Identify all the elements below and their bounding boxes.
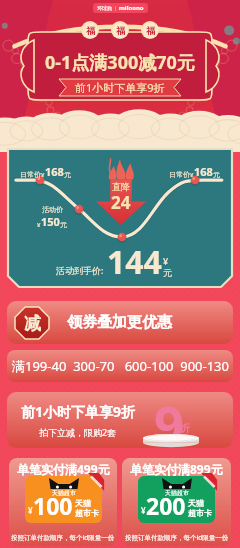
- staticText: 天猫: [188, 498, 204, 508]
- button[interactable]: 满199-40 300-70 600-100 900-130: [7, 350, 233, 382]
- staticText: ¥: [28, 505, 33, 516]
- staticText: 天猫超市: [52, 489, 76, 497]
- staticText: 前1小时下单享9折: [75, 80, 165, 95]
- staticText: 单笔实付满499元: [17, 461, 110, 477]
- staticText: 日常价: [20, 170, 41, 179]
- staticText: 减: [24, 313, 41, 334]
- staticText: 单笔实付满899元: [130, 461, 223, 477]
- staticText: 超市卡: [75, 508, 99, 518]
- staticText: 日常价: [169, 170, 190, 179]
- staticText: 福: [86, 25, 95, 36]
- staticText: ¥: [37, 221, 41, 229]
- staticText: 福: [116, 25, 125, 36]
- staticText: |: [114, 5, 117, 12]
- staticText: 按照订单付款顺序，每个id限量一份: [125, 533, 229, 542]
- staticText: 100: [33, 490, 73, 521]
- button[interactable]: 9: [7, 392, 233, 448]
- staticText: miloono: [119, 4, 144, 12]
- staticText: 按照订单付款顺序，每个id限量一份: [11, 533, 115, 542]
- staticText: 前1小时下单享9折: [21, 402, 136, 421]
- staticText: 0-1点满300减70元: [45, 50, 195, 75]
- staticText: ¥: [141, 505, 146, 516]
- staticText: 200: [146, 490, 186, 521]
- button[interactable]: 单笔实付满899元: [122, 458, 231, 546]
- staticText: ¥: [163, 255, 169, 267]
- staticText: 拍下立减，限购2套: [39, 426, 117, 438]
- staticText: ¥: [41, 171, 45, 179]
- staticText: 天猫超市: [165, 489, 189, 497]
- staticText: 折: [179, 421, 190, 435]
- staticText: 元: [60, 220, 67, 229]
- staticText: 活动价: [42, 205, 63, 214]
- staticText: 超市卡: [188, 508, 212, 518]
- button[interactable]: 减: [7, 301, 233, 344]
- staticText: 9: [154, 392, 184, 444]
- staticText: 150: [41, 214, 60, 229]
- staticText: 元: [163, 267, 172, 278]
- staticText: 福: [146, 25, 155, 36]
- staticText: 活动到手价:: [56, 264, 104, 276]
- staticText: 环球购: [97, 5, 112, 11]
- staticText: 直降: [112, 181, 130, 192]
- staticText: 168: [194, 164, 213, 179]
- button[interactable]: 单笔实付满499元: [9, 458, 117, 546]
- staticText: 元: [213, 170, 220, 179]
- staticText: ¥: [190, 171, 194, 179]
- button[interactable]: 环球购: [97, 4, 144, 12]
- staticText: 元: [64, 170, 71, 179]
- staticText: 24: [111, 191, 131, 214]
- staticText: 领券叠加更优惠: [67, 313, 172, 332]
- staticText: 168: [45, 164, 64, 179]
- staticText: 满199-40 300-70 600-100 900-130: [12, 357, 229, 375]
- staticText: 天猫: [75, 498, 91, 508]
- staticText: 144: [107, 240, 162, 284]
